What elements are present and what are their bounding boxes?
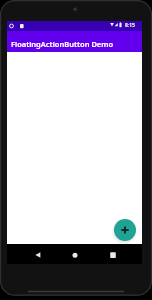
staticText: FloatingActionButton Demo bbox=[11, 39, 114, 49]
button[interactable] bbox=[68, 248, 82, 262]
button[interactable] bbox=[106, 248, 120, 262]
staticText: 8:15 bbox=[125, 22, 135, 29]
button[interactable] bbox=[31, 248, 45, 262]
button[interactable] bbox=[114, 219, 136, 241]
